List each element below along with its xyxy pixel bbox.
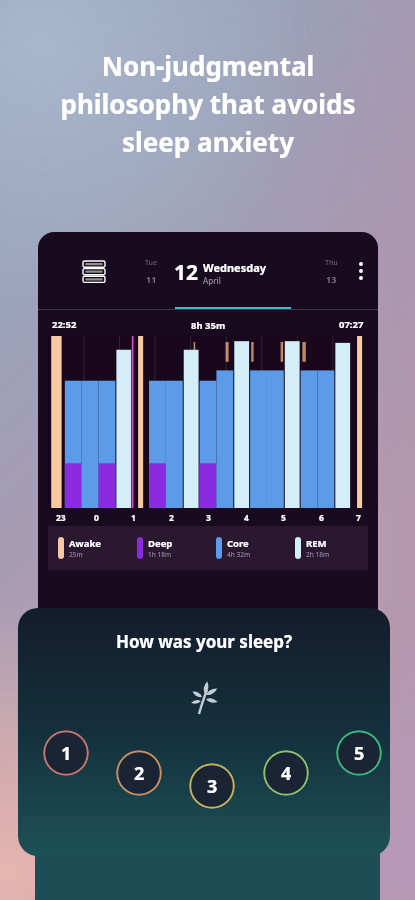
staticText: Non-judgmental philosophy that avoids sl… bbox=[60, 48, 356, 159]
staticText: 1h 18m bbox=[148, 550, 172, 559]
button[interactable]: REM bbox=[289, 526, 368, 570]
staticText: 4 bbox=[281, 761, 292, 786]
staticText: Deep bbox=[148, 537, 173, 550]
staticText: 4 bbox=[244, 512, 249, 524]
staticText: 25m bbox=[69, 550, 83, 559]
button[interactable]: Deep bbox=[131, 526, 210, 570]
staticText: April bbox=[203, 275, 221, 286]
staticText: 3 bbox=[206, 512, 211, 524]
button[interactable]: 1 bbox=[43, 730, 89, 776]
staticText: 12 bbox=[174, 258, 199, 287]
staticText: 5 bbox=[281, 512, 286, 524]
staticText: 4h 32m bbox=[227, 550, 251, 559]
button[interactable]: Tue bbox=[145, 258, 157, 285]
staticText: Tue bbox=[145, 258, 157, 268]
button[interactable]: Awake bbox=[52, 526, 131, 570]
staticText: Wednesday bbox=[203, 260, 266, 275]
staticText: Core bbox=[227, 537, 249, 550]
button[interactable]: More options bbox=[346, 256, 376, 286]
staticText: Awake bbox=[69, 537, 101, 550]
staticText: Thu bbox=[325, 258, 338, 268]
staticText: 7 bbox=[356, 512, 361, 524]
staticText: 6 bbox=[319, 512, 324, 524]
button[interactable]: 12 bbox=[174, 250, 292, 302]
staticText: 13 bbox=[326, 273, 337, 285]
button[interactable]: 5 bbox=[336, 730, 382, 776]
staticText: 0 bbox=[94, 512, 99, 524]
button[interactable]: Core bbox=[210, 526, 289, 570]
button[interactable]: Thu bbox=[325, 258, 338, 285]
staticText: 2 bbox=[169, 512, 174, 524]
staticText: 23 bbox=[56, 512, 66, 524]
staticText: 8h 35m bbox=[191, 319, 226, 332]
staticText: 11 bbox=[146, 273, 157, 285]
staticText: 1 bbox=[131, 512, 136, 524]
button[interactable]: 4 bbox=[263, 750, 309, 796]
button[interactable]: 3 bbox=[189, 763, 235, 809]
staticText: 07:27 bbox=[339, 318, 364, 331]
staticText: 5 bbox=[354, 741, 365, 766]
button[interactable]: 2 bbox=[116, 750, 162, 796]
staticText: 22:52 bbox=[52, 318, 77, 331]
staticText: 1 bbox=[61, 741, 72, 766]
staticText: 3 bbox=[207, 774, 218, 799]
staticText: 2h 18m bbox=[306, 550, 330, 559]
staticText: 2 bbox=[134, 761, 145, 786]
button[interactable]: Menu bbox=[78, 256, 110, 288]
staticText: REM bbox=[306, 537, 327, 550]
staticText: How was your sleep? bbox=[116, 630, 293, 653]
